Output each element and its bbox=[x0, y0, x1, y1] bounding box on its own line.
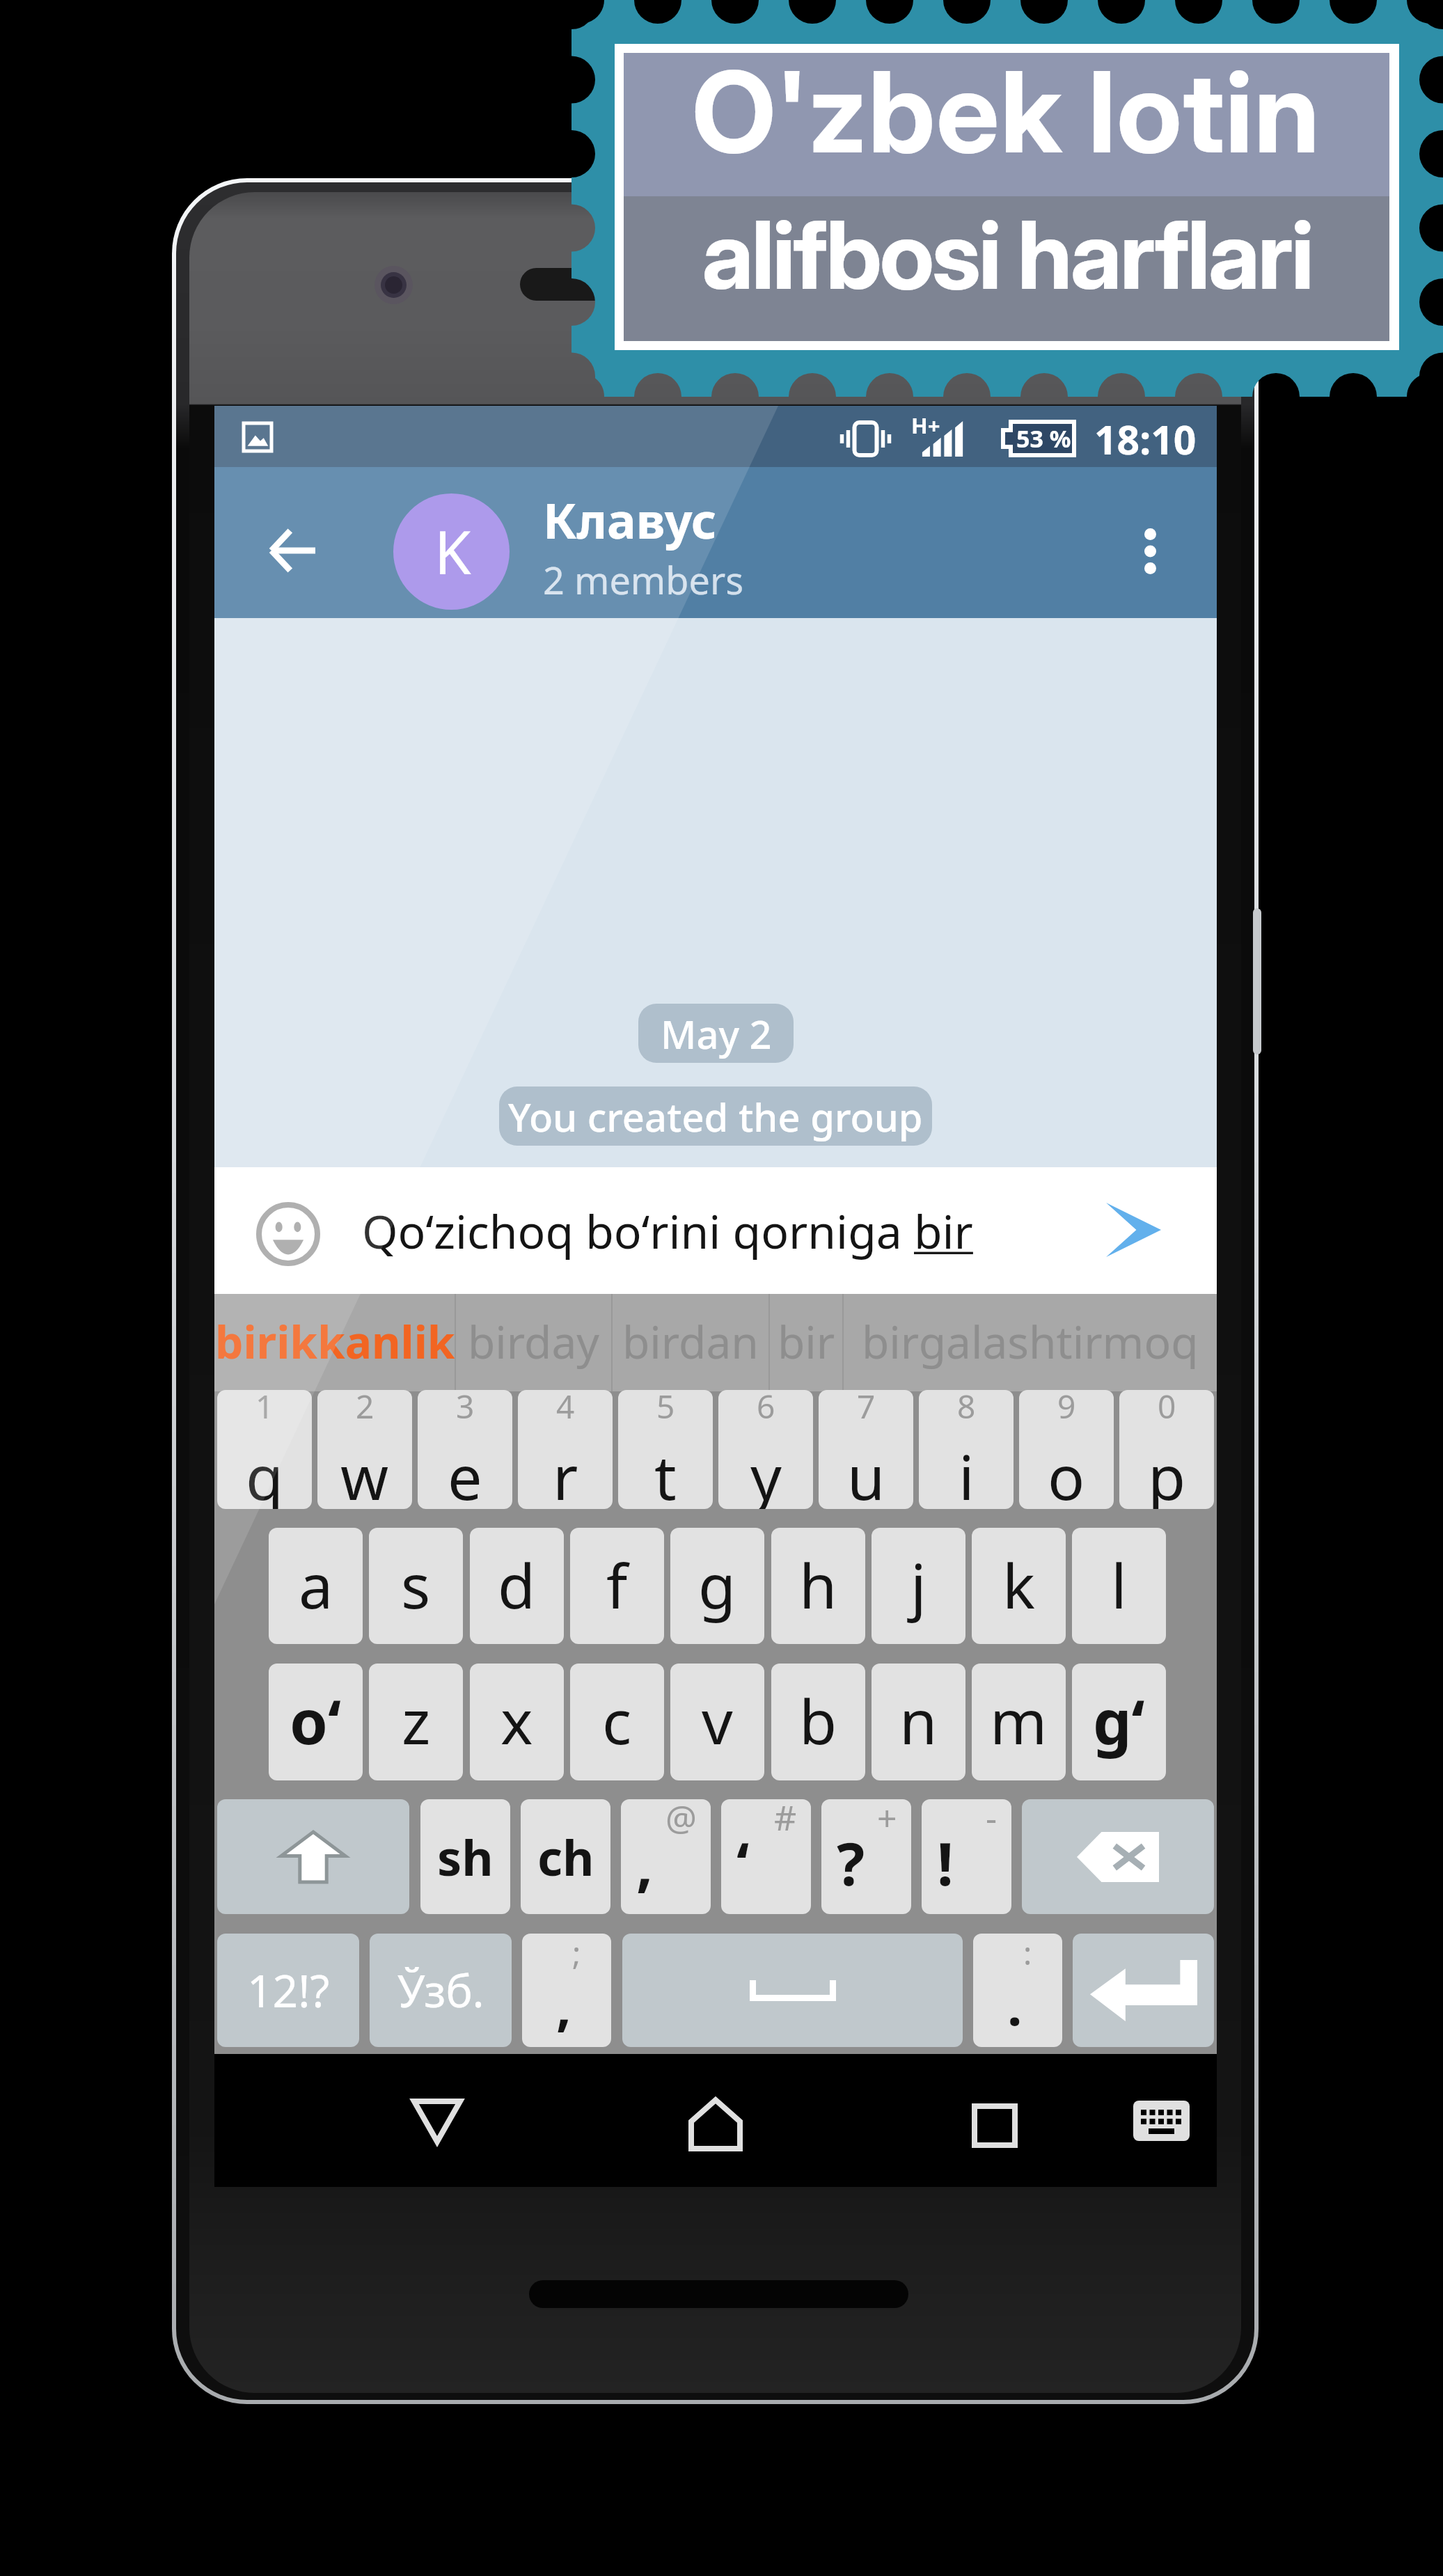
button[interactable]: 7 bbox=[819, 1390, 913, 1509]
button[interactable]: 6 bbox=[718, 1390, 813, 1509]
staticText: bir bbox=[914, 1199, 973, 1262]
staticText: t bbox=[654, 1435, 677, 1509]
button[interactable]: 12!? bbox=[217, 1934, 359, 2047]
staticText: bir bbox=[778, 1311, 835, 1372]
staticText: 2 members bbox=[543, 554, 744, 606]
button[interactable]: - bbox=[922, 1799, 1011, 1914]
button[interactable]: z bbox=[369, 1664, 463, 1780]
staticText: 7 bbox=[857, 1390, 876, 1428]
button[interactable]: Ўзб. bbox=[370, 1934, 512, 2047]
button[interactable]: l bbox=[1072, 1528, 1166, 1644]
button[interactable]: Enter bbox=[1073, 1934, 1214, 2047]
button[interactable]: 3 bbox=[418, 1390, 512, 1509]
button[interactable]: a bbox=[269, 1528, 363, 1644]
button[interactable]: s bbox=[369, 1528, 463, 1644]
staticText: ch bbox=[537, 1824, 594, 1890]
button[interactable]: f bbox=[570, 1528, 664, 1644]
button[interactable]: Keyboard bbox=[1112, 2062, 1210, 2180]
button[interactable]: # bbox=[721, 1799, 811, 1914]
button[interactable]: j bbox=[872, 1528, 965, 1644]
staticText: k bbox=[1002, 1543, 1035, 1627]
button[interactable]: h bbox=[771, 1528, 865, 1644]
button[interactable]: 5 bbox=[618, 1390, 713, 1509]
button[interactable]: Home bbox=[667, 2065, 764, 2183]
button[interactable]: 0 bbox=[1119, 1390, 1214, 1509]
button[interactable]: Recents bbox=[946, 2067, 1043, 2185]
button[interactable]: Backspace bbox=[1022, 1799, 1214, 1914]
button[interactable]: d bbox=[470, 1528, 564, 1644]
button[interactable]: : bbox=[973, 1934, 1062, 2047]
staticText: s bbox=[401, 1543, 431, 1627]
staticText: + bbox=[877, 1799, 897, 1841]
staticText: 0 bbox=[1158, 1390, 1176, 1428]
button[interactable]: birdan bbox=[612, 1294, 769, 1391]
staticText: ; bbox=[572, 1934, 581, 1975]
staticText: p bbox=[1148, 1435, 1186, 1509]
button[interactable]: c bbox=[570, 1664, 664, 1780]
button[interactable]: gʻ bbox=[1072, 1664, 1166, 1780]
staticText: u bbox=[847, 1435, 885, 1509]
staticText: You created the group bbox=[508, 1090, 923, 1143]
staticText: f bbox=[606, 1543, 628, 1627]
staticText: # bbox=[774, 1799, 797, 1841]
button[interactable]: v bbox=[670, 1664, 764, 1780]
staticText: 3 bbox=[456, 1390, 475, 1428]
button[interactable]: Space bbox=[622, 1934, 963, 2047]
staticText: o bbox=[1048, 1435, 1085, 1509]
staticText: n bbox=[899, 1679, 938, 1762]
button[interactable]: m bbox=[972, 1664, 1066, 1780]
staticText: w bbox=[340, 1435, 389, 1509]
staticText: May 2 bbox=[661, 1007, 772, 1060]
button[interactable]: 1 bbox=[217, 1390, 312, 1509]
staticText: birgalashtirmoq bbox=[862, 1311, 1199, 1372]
staticText: e bbox=[448, 1435, 482, 1509]
staticText: z bbox=[402, 1679, 431, 1762]
button[interactable]: Send bbox=[1095, 1195, 1172, 1265]
button[interactable]: sh bbox=[420, 1799, 510, 1914]
staticText: y bbox=[750, 1435, 782, 1509]
staticText: 2 bbox=[356, 1390, 374, 1428]
staticText: . bbox=[1007, 1969, 1023, 2041]
staticText: h bbox=[799, 1543, 837, 1627]
button[interactable]: More options bbox=[1090, 484, 1210, 618]
staticText: @ bbox=[665, 1799, 697, 1841]
staticText: r bbox=[553, 1435, 578, 1509]
staticText: 4 bbox=[556, 1390, 575, 1428]
button[interactable]: birikkanlik bbox=[214, 1294, 455, 1391]
staticText: birdan bbox=[622, 1311, 759, 1372]
button[interactable]: Shift bbox=[217, 1799, 409, 1914]
staticText: b bbox=[799, 1679, 837, 1762]
staticText: d bbox=[498, 1543, 536, 1627]
button[interactable]: ; bbox=[522, 1934, 611, 2047]
button[interactable]: b bbox=[771, 1664, 865, 1780]
staticText: l bbox=[1111, 1543, 1127, 1627]
staticText: v bbox=[702, 1679, 733, 1762]
button[interactable]: birday bbox=[455, 1294, 612, 1391]
button[interactable]: Back bbox=[226, 484, 358, 617]
button[interactable]: bir bbox=[769, 1294, 843, 1391]
staticText: oʻ bbox=[290, 1679, 342, 1762]
button[interactable]: 4 bbox=[518, 1390, 613, 1509]
button[interactable]: @ bbox=[621, 1799, 711, 1914]
staticText: , bbox=[556, 1969, 571, 2041]
staticText: g bbox=[698, 1543, 736, 1627]
staticText: sh bbox=[437, 1824, 494, 1890]
button[interactable]: 9 bbox=[1019, 1390, 1114, 1509]
button[interactable]: 2 bbox=[317, 1390, 412, 1509]
button[interactable]: birgalashtirmoq bbox=[843, 1294, 1217, 1391]
button[interactable]: n bbox=[872, 1664, 965, 1780]
button[interactable]: g bbox=[670, 1528, 764, 1644]
button[interactable]: oʻ bbox=[269, 1664, 363, 1780]
button[interactable]: + bbox=[821, 1799, 911, 1914]
staticText: Ўзб. bbox=[397, 1960, 484, 2021]
button[interactable]: 8 bbox=[919, 1390, 1014, 1509]
button[interactable]: k bbox=[972, 1528, 1066, 1644]
staticText: 53 % bbox=[1016, 422, 1071, 455]
button[interactable]: x bbox=[470, 1664, 564, 1780]
staticText: O'zbek lotin bbox=[692, 44, 1321, 180]
staticText: birikkanlik bbox=[215, 1311, 455, 1372]
staticText: ʻ bbox=[736, 1823, 750, 1902]
button[interactable]: Emoji bbox=[241, 1199, 336, 1269]
button[interactable]: Back bbox=[388, 2062, 486, 2181]
button[interactable]: ch bbox=[521, 1799, 610, 1914]
